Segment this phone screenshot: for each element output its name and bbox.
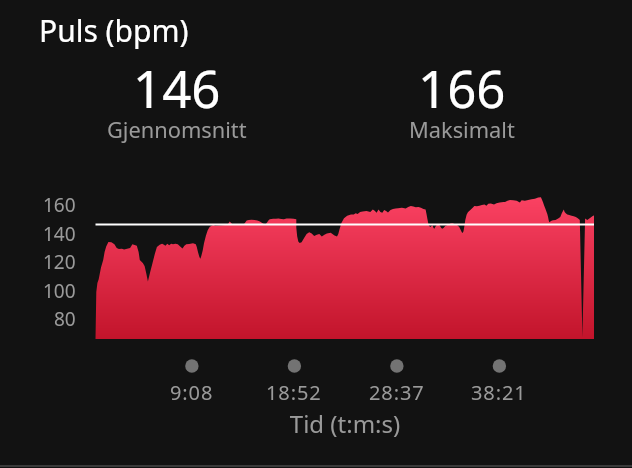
staticText: Gjennomsnitt: [107, 115, 247, 145]
staticText: 120: [43, 249, 76, 273]
staticText: 160: [43, 192, 76, 216]
staticText: Tid (t:m:s): [245, 407, 445, 437]
button[interactable]: 146: [67, 53, 287, 152]
staticText: 166: [418, 53, 506, 122]
other: Heart rate chart: [0, 0, 632, 468]
staticText: 38:21: [471, 379, 527, 403]
staticText: 28:37: [369, 379, 425, 403]
staticText: 140: [43, 221, 76, 245]
staticText: 146: [133, 53, 221, 122]
staticText: Puls (bpm): [39, 10, 189, 51]
staticText: 9:08: [170, 379, 214, 403]
staticText: 80: [54, 306, 76, 330]
staticText: 18:52: [266, 379, 322, 403]
button[interactable]: 166: [352, 53, 572, 152]
staticText: Maksimalt: [409, 115, 515, 145]
staticText: 100: [43, 278, 76, 302]
